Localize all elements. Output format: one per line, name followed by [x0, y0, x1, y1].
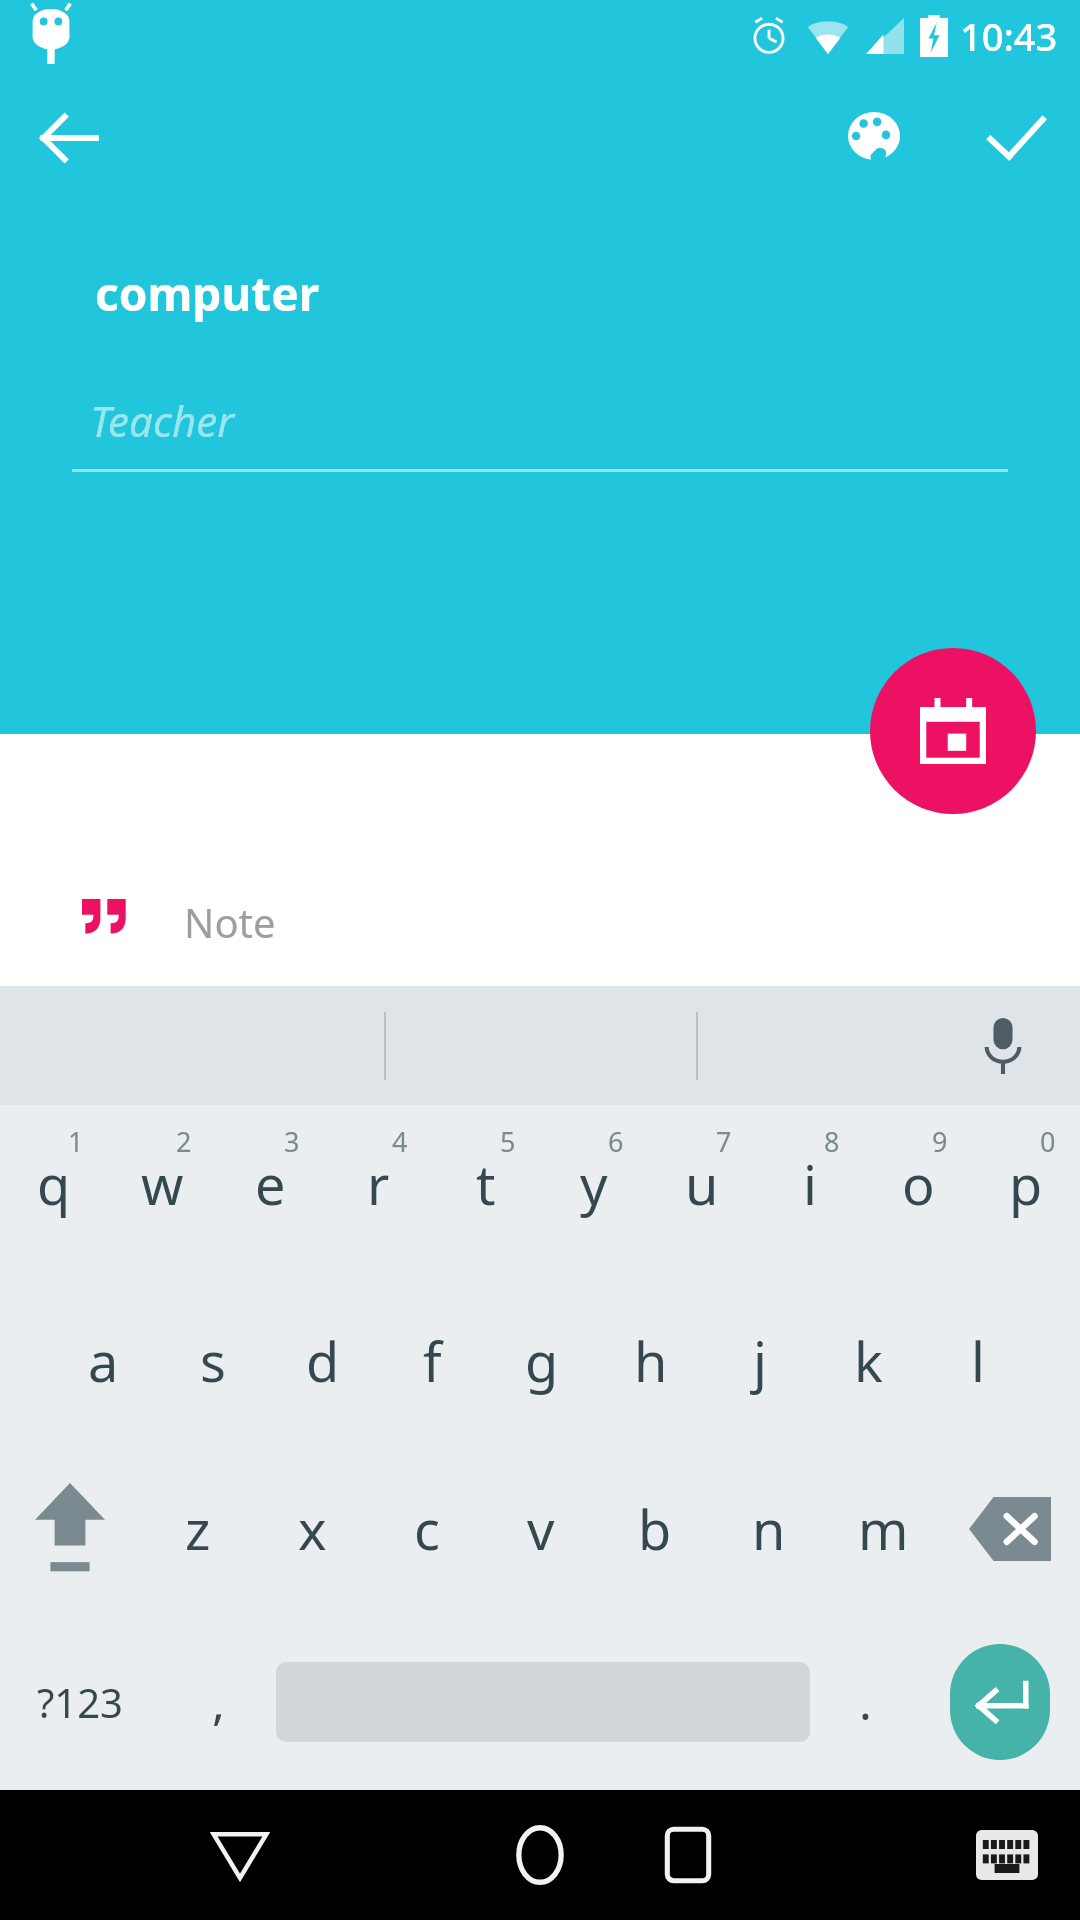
button[interactable]: d	[268, 1277, 378, 1445]
staticText: e	[255, 1147, 286, 1221]
staticText: x	[298, 1492, 327, 1566]
button[interactable]: 0	[972, 1105, 1080, 1277]
staticText: 8	[824, 1123, 840, 1160]
button[interactable]: n	[712, 1445, 826, 1613]
staticText: r	[367, 1147, 390, 1221]
staticText: p	[1009, 1147, 1043, 1221]
button[interactable]: 9	[864, 1105, 972, 1277]
button[interactable]: k	[814, 1277, 923, 1445]
staticText: ?123	[37, 1675, 123, 1729]
staticText: g	[525, 1324, 559, 1398]
button[interactable]: a	[48, 1277, 158, 1445]
staticText: z	[185, 1492, 211, 1566]
staticText: w	[141, 1147, 184, 1221]
staticText: Teacher	[90, 392, 234, 449]
staticText: Note	[184, 895, 276, 949]
button[interactable]: Change color	[824, 88, 924, 188]
staticText: u	[685, 1147, 719, 1221]
staticText: a	[88, 1324, 119, 1398]
button[interactable]: h	[596, 1277, 705, 1445]
staticText: t	[476, 1147, 496, 1221]
staticText: h	[634, 1324, 668, 1398]
button[interactable]: Pick date	[870, 648, 1036, 814]
staticText: 4	[392, 1123, 408, 1160]
staticText: j	[753, 1324, 767, 1398]
button[interactable]: Hide keyboard	[952, 1790, 1062, 1920]
button[interactable]: Voice input	[960, 1003, 1046, 1089]
button[interactable]: Back	[20, 90, 116, 186]
button[interactable]: 5	[432, 1105, 540, 1277]
button[interactable]: 1	[0, 1105, 108, 1277]
button[interactable]: Home	[480, 1790, 600, 1920]
staticText: 10:43	[960, 10, 1058, 62]
button[interactable]: 4	[324, 1105, 432, 1277]
button[interactable]: z	[140, 1445, 255, 1613]
staticText: s	[200, 1324, 226, 1398]
button[interactable]: .	[810, 1613, 920, 1790]
staticText: k	[854, 1324, 883, 1398]
button[interactable]: Note	[0, 872, 1080, 972]
staticText: l	[971, 1324, 985, 1398]
button[interactable]: g	[487, 1277, 596, 1445]
button[interactable]: 2	[108, 1105, 216, 1277]
button[interactable]: b	[598, 1445, 712, 1613]
staticText: 0	[1040, 1123, 1056, 1160]
button[interactable]: s	[158, 1277, 268, 1445]
button[interactable]: 7	[648, 1105, 756, 1277]
button[interactable]: Shift	[0, 1445, 140, 1613]
button[interactable]: Save	[966, 88, 1066, 188]
button[interactable]: Back	[180, 1790, 300, 1920]
staticText: 3	[284, 1123, 300, 1160]
staticText: o	[902, 1147, 935, 1221]
button[interactable]: v	[484, 1445, 598, 1613]
button[interactable]: 3	[216, 1105, 324, 1277]
button[interactable]: Teacher	[72, 380, 1008, 500]
staticText: i	[803, 1147, 817, 1221]
staticText: n	[752, 1492, 786, 1566]
staticText: 7	[716, 1123, 732, 1160]
button[interactable]: ,	[160, 1613, 276, 1790]
staticText: f	[423, 1324, 442, 1398]
button[interactable]: c	[370, 1445, 484, 1613]
staticText: m	[858, 1492, 909, 1566]
staticText: 5	[500, 1123, 516, 1160]
staticText: computer	[95, 262, 320, 325]
staticText: b	[638, 1492, 672, 1566]
staticText: v	[527, 1492, 555, 1566]
staticText: d	[306, 1324, 340, 1398]
button[interactable]: m	[826, 1445, 940, 1613]
staticText: q	[37, 1147, 71, 1221]
button[interactable]: l	[923, 1277, 1032, 1445]
staticText: 1	[68, 1123, 84, 1160]
button[interactable]: Backspace	[940, 1445, 1080, 1613]
staticText: 9	[932, 1123, 948, 1160]
staticText: .	[859, 1669, 872, 1734]
button[interactable]: f	[378, 1277, 487, 1445]
staticText: 6	[608, 1123, 624, 1160]
button[interactable]: 8	[756, 1105, 864, 1277]
button[interactable]: x	[255, 1445, 370, 1613]
button[interactable]: Enter	[950, 1644, 1050, 1760]
staticText: 2	[176, 1123, 192, 1160]
staticText: ,	[212, 1669, 225, 1734]
button[interactable]: Recents	[628, 1790, 748, 1920]
button[interactable]: ?123	[0, 1613, 160, 1790]
staticText: c	[414, 1492, 440, 1566]
button[interactable]: 6	[540, 1105, 648, 1277]
staticText: y	[580, 1147, 608, 1221]
button[interactable]: j	[705, 1277, 814, 1445]
